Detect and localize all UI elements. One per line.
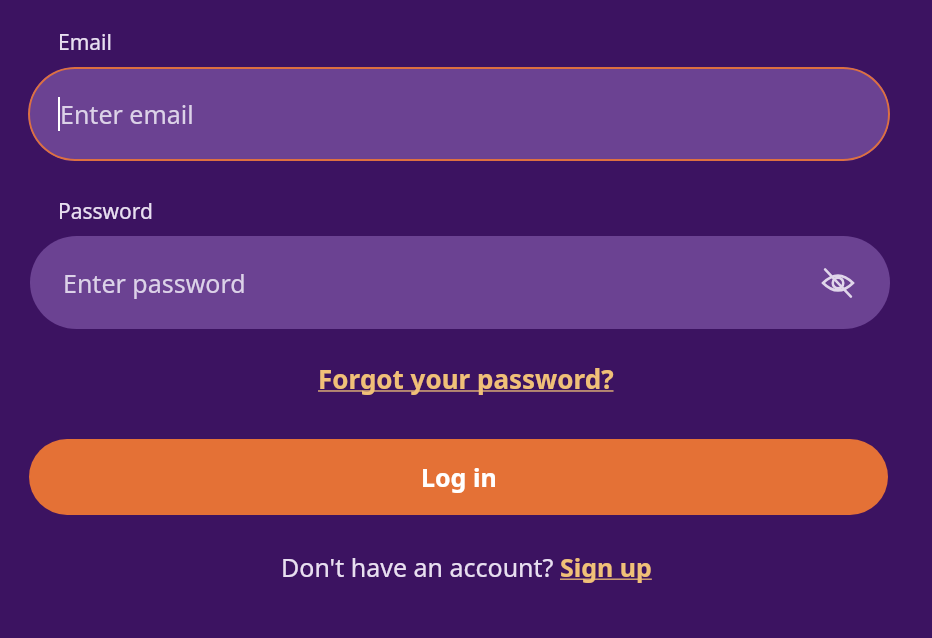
button[interactable]: Show password (814, 259, 862, 307)
staticText: Sign up (560, 550, 652, 584)
staticText: Email (58, 28, 112, 57)
staticText: Forgot your password? (318, 361, 614, 396)
button[interactable]: Enter password (30, 236, 890, 329)
button[interactable]: Forgot your password? (318, 361, 614, 396)
staticText: Don't have an account? (281, 550, 560, 584)
button[interactable]: Enter email (28, 67, 890, 161)
staticText: Enter email (60, 97, 194, 131)
staticText: Password (58, 197, 153, 226)
staticText: Log in (421, 460, 497, 494)
button[interactable]: Log in (29, 439, 888, 515)
button[interactable]: Sign up (560, 550, 652, 584)
staticText: Enter password (63, 266, 246, 300)
